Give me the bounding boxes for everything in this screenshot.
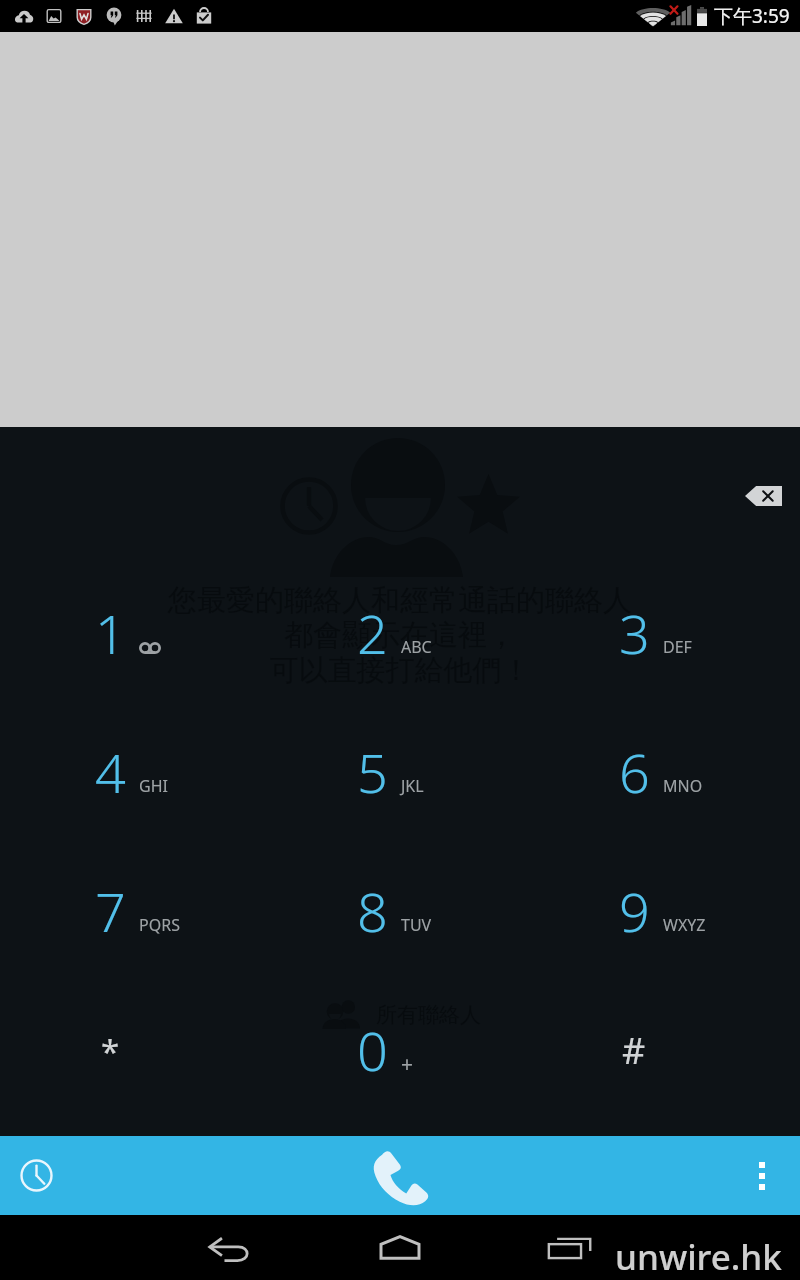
staticText: PQRS — [139, 914, 180, 936]
staticText: JKL — [401, 775, 424, 797]
button[interactable]: Dial 9 — [503, 844, 765, 983]
staticText: 9 — [619, 874, 650, 936]
button[interactable]: Dial 8 — [241, 844, 503, 983]
button[interactable]: Dial 0 — [241, 983, 503, 1122]
button[interactable]: Home — [358, 1215, 442, 1280]
button[interactable]: Dial 1 — [0, 566, 241, 705]
staticText: 您最愛的聯絡人和經常通話的聯絡人 都會顯示在這裡， 可以直接打給他們！ — [0, 582, 800, 689]
staticText: 5 — [357, 735, 388, 797]
button[interactable]: Dial 2 — [241, 566, 503, 705]
staticText: MNO — [663, 775, 703, 797]
staticText: unwire.hk — [615, 1233, 782, 1280]
staticText: GHI — [139, 775, 168, 797]
staticText: 4 — [95, 735, 126, 797]
staticText: # — [622, 1026, 646, 1070]
button[interactable]: Backspace — [716, 460, 798, 532]
button[interactable]: Back — [188, 1215, 272, 1280]
staticText: 0 — [357, 1013, 388, 1075]
button[interactable]: More options — [724, 1136, 800, 1215]
staticText: 2 — [357, 596, 388, 658]
staticText: 1 — [95, 596, 126, 658]
staticText: 下午3:59 — [714, 3, 790, 29]
staticText: 7 — [95, 874, 126, 936]
staticText: * — [101, 1029, 120, 1073]
staticText: TUV — [401, 914, 432, 936]
button[interactable]: Recent calls — [0, 1136, 76, 1215]
staticText: 8 — [357, 874, 388, 936]
button[interactable]: Dial # — [503, 983, 765, 1122]
button[interactable]: Dial * — [0, 983, 241, 1122]
button[interactable]: Dial 4 — [0, 705, 241, 844]
button[interactable]: Dial 3 — [503, 566, 765, 705]
staticText: + — [401, 1050, 414, 1079]
button[interactable]: Dialpad — [345, 1136, 455, 1215]
staticText: ABC — [401, 636, 432, 658]
staticText: 3 — [619, 596, 650, 658]
button[interactable]: Dial 7 — [0, 844, 241, 983]
staticText: 6 — [619, 735, 650, 797]
button[interactable]: Dial 5 — [241, 705, 503, 844]
button[interactable]: Dial 6 — [503, 705, 765, 844]
button[interactable]: Recents — [528, 1215, 612, 1280]
staticText: DEF — [663, 636, 692, 658]
staticText: WXYZ — [663, 914, 706, 936]
